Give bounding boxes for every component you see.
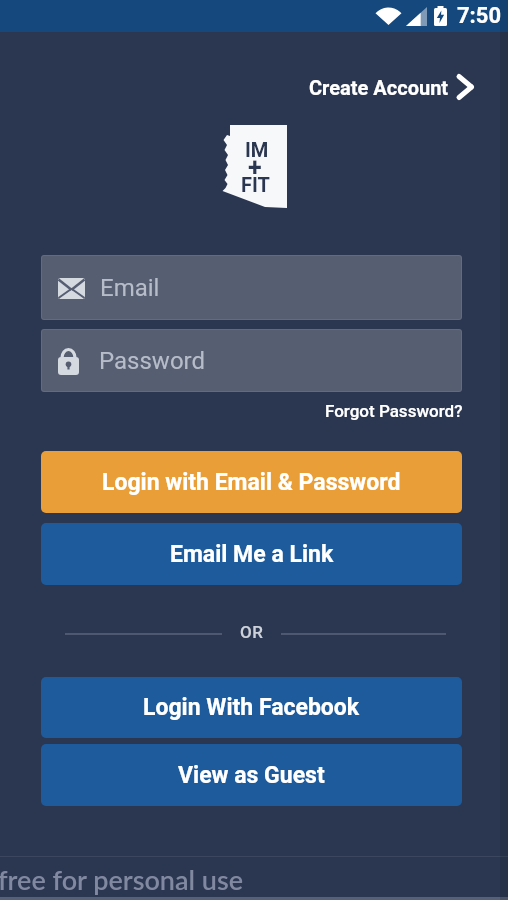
button[interactable]: Forgot Password? — [323, 399, 465, 423]
button[interactable]: Password — [41, 329, 462, 392]
button[interactable]: Create Account — [305, 70, 478, 104]
staticText: FIT — [241, 173, 270, 196]
button[interactable]: Login With Facebook — [41, 677, 462, 738]
staticText: 7:50 — [457, 3, 502, 29]
staticText: Forgot Password? — [325, 401, 463, 421]
button[interactable]: Login with Email & Password — [41, 451, 462, 513]
staticText: Email — [100, 274, 160, 302]
staticText: Create Account — [309, 76, 449, 99]
button[interactable]: Email — [41, 255, 462, 320]
staticText: Password — [99, 347, 206, 375]
staticText: Email Me a Link — [170, 541, 334, 568]
staticText: + — [248, 153, 262, 182]
staticText: OR — [240, 622, 264, 642]
button[interactable]: View as Guest — [41, 744, 462, 806]
staticText: IM — [245, 138, 269, 161]
staticText: Login With Facebook — [143, 694, 360, 721]
staticText: free for personal use — [0, 863, 244, 895]
staticText: View as Guest — [178, 762, 325, 789]
button[interactable]: Email Me a Link — [41, 523, 462, 585]
staticText: Login with Email & Password — [102, 469, 401, 496]
